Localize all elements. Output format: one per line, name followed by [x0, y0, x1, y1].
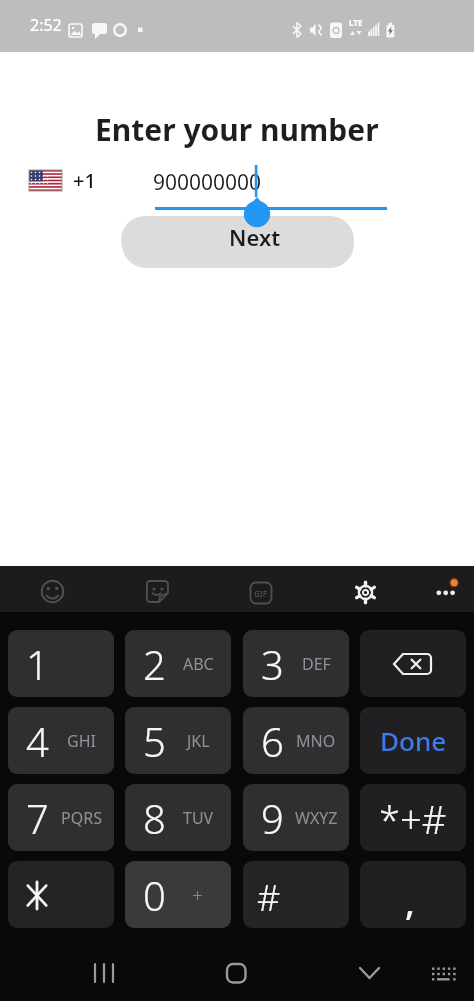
staticText: MNO	[296, 730, 336, 752]
staticText: DEF	[302, 653, 331, 675]
button[interactable]	[145, 579, 171, 605]
staticText: GIF	[254, 588, 268, 599]
button[interactable]	[84, 953, 124, 993]
staticText: ,	[405, 877, 415, 926]
button[interactable]: *+#	[360, 784, 466, 851]
staticText: #	[257, 873, 281, 922]
staticText: 4	[26, 714, 49, 768]
staticText: GHI	[67, 730, 96, 752]
button[interactable]	[37, 576, 68, 607]
button[interactable]: 7	[8, 784, 114, 851]
staticText: 5	[143, 714, 166, 768]
staticText: 900000000	[153, 168, 262, 197]
staticText: 8	[143, 791, 166, 845]
staticText: TUV	[183, 807, 214, 829]
staticText: Done	[380, 723, 447, 758]
button[interactable]: Next	[121, 216, 354, 264]
button[interactable]: 8	[125, 784, 231, 851]
button[interactable]	[425, 953, 461, 989]
staticText: LTE	[349, 17, 363, 28]
button[interactable]	[354, 581, 377, 604]
button[interactable]: 3	[243, 630, 349, 697]
staticText: 7	[26, 791, 49, 845]
button[interactable]: GIF	[250, 582, 272, 604]
staticText: Enter your number	[95, 109, 379, 150]
staticText: 0	[143, 868, 166, 922]
staticText: 9	[261, 791, 284, 845]
button[interactable]: 1	[8, 630, 114, 697]
staticText: ABC	[183, 653, 214, 675]
button[interactable]	[430, 575, 464, 609]
staticText: JKL	[187, 730, 210, 752]
button[interactable]: 6	[243, 707, 349, 774]
button[interactable]	[349, 953, 389, 993]
staticText: 1	[26, 637, 49, 691]
staticText: 3	[261, 637, 284, 691]
staticText: 6	[261, 714, 284, 768]
staticText: Next	[229, 222, 281, 252]
button[interactable]	[216, 953, 256, 993]
staticText: WXYZ	[295, 807, 338, 829]
button[interactable]: 9	[243, 784, 349, 851]
staticText: PQRS	[61, 807, 102, 829]
button[interactable]	[8, 861, 114, 928]
button[interactable]: ,	[360, 861, 466, 928]
button[interactable]: 5	[125, 707, 231, 774]
staticText: 2	[143, 637, 166, 691]
button[interactable]	[360, 630, 466, 697]
staticText: +1	[73, 167, 96, 194]
button[interactable]: #	[243, 861, 349, 928]
button[interactable]: Done	[360, 707, 466, 774]
button[interactable]: 0	[125, 861, 231, 928]
staticText: 2:52	[30, 14, 62, 36]
button[interactable]: 2	[125, 630, 231, 697]
staticText: *+#	[379, 793, 447, 845]
staticText: +	[192, 882, 203, 908]
button[interactable]: 4	[8, 707, 114, 774]
